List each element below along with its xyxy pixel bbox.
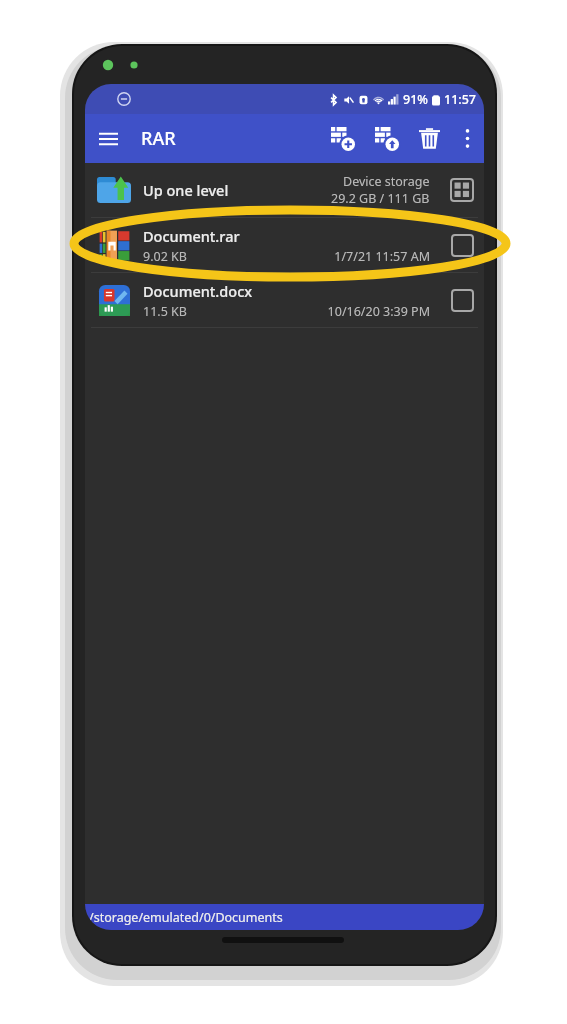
button[interactable]: Document.rar — [85, 218, 484, 272]
button[interactable]: Add to archive — [320, 114, 364, 163]
button[interactable]: More options — [450, 114, 484, 163]
staticText: Up one level — [143, 180, 229, 200]
button[interactable]: Select Document.docx — [440, 273, 484, 327]
button[interactable]: Up one level — [85, 163, 484, 217]
staticText: 1/7/21 11:57 AM — [334, 248, 430, 265]
button[interactable]: Switch to grid view — [440, 163, 484, 217]
staticText: 91% — [403, 91, 428, 108]
button[interactable]: Delete — [408, 114, 450, 163]
staticText: 29.2 GB / 111 GB — [331, 190, 430, 207]
staticText: Document.rar — [143, 226, 240, 246]
button[interactable]: /storage/emulated/0/Documents — [85, 904, 484, 930]
staticText: Document.docx — [143, 281, 253, 301]
button[interactable]: Extract archive — [364, 114, 408, 163]
staticText: 11.5 KB — [143, 303, 187, 320]
staticText: Device storage — [343, 173, 430, 190]
button[interactable]: Select Document.rar — [440, 218, 484, 272]
staticText: /storage/emulated/0/Documents — [89, 909, 283, 926]
staticText: RAR — [141, 126, 176, 151]
staticText: 11:57 — [444, 91, 477, 108]
button[interactable]: Open navigation drawer — [85, 114, 131, 163]
staticText: 10/16/20 3:39 PM — [327, 303, 430, 320]
button[interactable]: Document.docx — [85, 273, 484, 327]
staticText: 9.02 KB — [143, 248, 187, 265]
